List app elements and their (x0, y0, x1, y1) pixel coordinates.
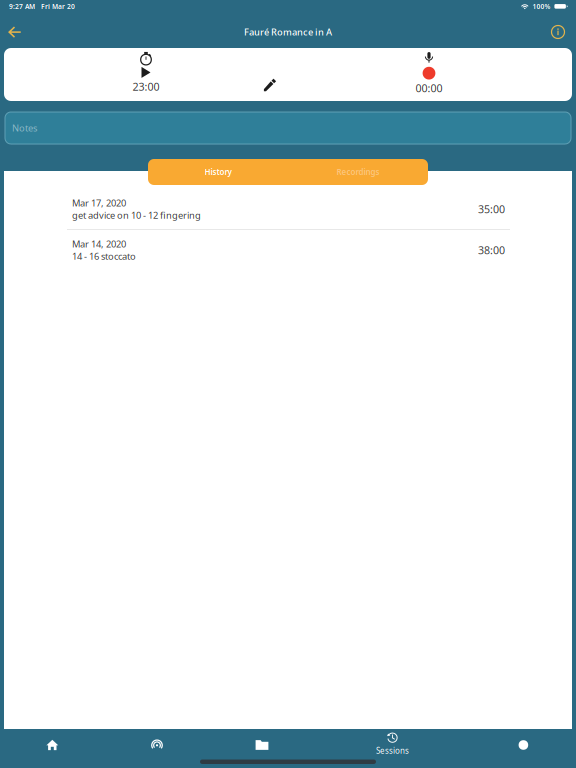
staticText: get advice on 10 - 12 fingering (72, 209, 201, 221)
button[interactable]: Information (542, 19, 574, 45)
staticText: 23:00 (132, 79, 159, 94)
button[interactable]: Practice timer (106, 48, 186, 101)
staticText: History (204, 167, 231, 177)
staticText: 9:27 AM (9, 2, 35, 11)
staticText: Mar 14, 2020 (72, 238, 126, 250)
button[interactable]: Record (389, 48, 469, 101)
staticText: 14 - 16 stoccato (72, 250, 136, 262)
button[interactable]: History (148, 159, 288, 185)
button[interactable]: Recordings (288, 159, 428, 185)
button[interactable]: Library (240, 733, 284, 757)
button[interactable]: More (501, 733, 545, 757)
button[interactable]: Mar 17, 2020 (67, 189, 510, 229)
staticText: Recordings (336, 167, 379, 177)
staticText: Mar 17, 2020 (72, 197, 126, 209)
staticText: Sessions (376, 745, 409, 756)
staticText: 00:00 (415, 81, 442, 95)
button[interactable]: Edit notes (249, 69, 291, 101)
button[interactable]: Sessions (366, 732, 418, 756)
button[interactable]: Notes (5, 112, 571, 144)
staticText: Notes (12, 122, 37, 134)
staticText: 100% (528, 2, 554, 11)
staticText: 35:00 (478, 202, 505, 216)
button[interactable]: Metronome (135, 733, 179, 757)
staticText: Fri Mar 20 (35, 2, 75, 11)
button[interactable]: Home (30, 733, 74, 757)
button[interactable]: Back (0, 19, 30, 45)
staticText: Fauré Romance in A (244, 26, 332, 38)
staticText: 38:00 (478, 243, 505, 257)
button[interactable]: Mar 14, 2020 (67, 230, 510, 270)
